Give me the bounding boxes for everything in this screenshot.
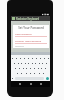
button[interactable]: New Password: [15, 32, 47, 37]
staticText: New Password: [15, 32, 32, 35]
staticText: Set Your Password: [13, 26, 49, 30]
button[interactable]: Enter: [46, 77, 49, 80]
button[interactable]: App icon: [11, 16, 50, 21]
button[interactable]: Confirm New Password: [15, 39, 47, 44]
staticText: required: [15, 45, 24, 48]
staticText: Confirm New Password: [15, 39, 42, 42]
staticText: Rockstar Keyboard: [16, 17, 40, 21]
